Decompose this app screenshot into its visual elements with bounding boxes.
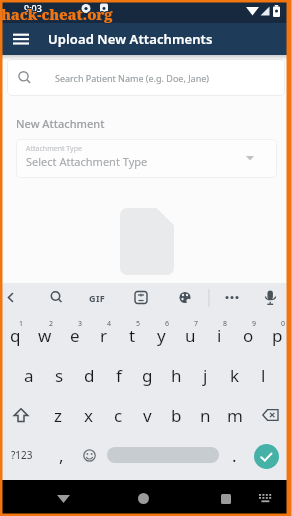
- button[interactable]: ?123: [2, 435, 42, 475]
- staticText: h: [171, 364, 182, 387]
- staticText: 4: [107, 319, 112, 329]
- button[interactable]: [212, 485, 239, 512]
- button[interactable]: o: [234, 315, 263, 355]
- staticText: 8: [223, 319, 228, 329]
- staticText: j: [203, 364, 208, 387]
- button[interactable]: [254, 395, 286, 435]
- staticText: ,: [59, 444, 64, 467]
- button[interactable]: z: [43, 395, 73, 435]
- staticText: ?123: [11, 448, 33, 462]
- staticText: hack-cheat.org: [0, 4, 112, 24]
- button[interactable]: .: [222, 435, 246, 475]
- button[interactable]: b: [162, 395, 191, 435]
- staticText: GIF: [89, 292, 106, 304]
- button[interactable]: q: [0, 315, 30, 355]
- staticText: 9: [252, 319, 257, 329]
- staticText: Upload New Attachments: [48, 30, 213, 48]
- button[interactable]: s: [44, 355, 74, 395]
- button[interactable]: w: [30, 315, 60, 355]
- staticText: e: [70, 324, 80, 347]
- button[interactable]: v: [133, 395, 162, 435]
- staticText: z: [54, 404, 62, 427]
- staticText: w: [38, 324, 52, 347]
- button[interactable]: Attachment Type: [16, 139, 277, 178]
- staticText: m: [227, 404, 243, 427]
- button[interactable]: [130, 485, 157, 512]
- staticText: v: [143, 404, 152, 427]
- staticText: hack-cheat.org: [1, 3, 113, 23]
- staticText: 0: [281, 319, 286, 329]
- button[interactable]: y: [147, 315, 176, 355]
- staticText: Attachment Type: [26, 144, 82, 154]
- button[interactable]: ,: [48, 435, 74, 475]
- staticText: a: [24, 364, 34, 387]
- staticText: Select Attachment Type: [26, 154, 148, 169]
- button[interactable]: l: [249, 355, 278, 395]
- staticText: x: [84, 404, 93, 427]
- staticText: 2: [49, 319, 54, 329]
- staticText: 1: [19, 319, 24, 329]
- staticText: hack-cheat.org: [0, 3, 112, 23]
- button[interactable]: d: [74, 355, 104, 395]
- button[interactable]: t: [118, 315, 147, 355]
- staticText: hack-cheat.org: [2, 5, 114, 25]
- staticText: 5: [136, 319, 141, 329]
- button[interactable]: j: [191, 355, 220, 395]
- staticText: Search Patient Name (e.g. Doe, Jane): [55, 72, 210, 84]
- staticText: hack-cheat.org: [1, 5, 113, 25]
- staticText: hack-cheat.org: [1, 4, 113, 24]
- button[interactable]: [107, 447, 219, 463]
- staticText: hack-cheat.org: [2, 4, 114, 24]
- staticText: 7: [194, 319, 199, 329]
- button[interactable]: r: [89, 315, 118, 355]
- button[interactable]: k: [220, 355, 249, 395]
- button[interactable]: e: [60, 315, 89, 355]
- button[interactable]: [6, 395, 36, 435]
- button[interactable]: c: [103, 395, 133, 435]
- staticText: 6: [165, 319, 170, 329]
- button[interactable]: p: [263, 315, 292, 355]
- staticText: o: [243, 324, 254, 347]
- button[interactable]: h: [162, 355, 191, 395]
- button[interactable]: g: [133, 355, 162, 395]
- button[interactable]: [76, 435, 102, 475]
- staticText: s: [55, 364, 64, 387]
- button[interactable]: [254, 444, 279, 469]
- staticText: l: [261, 364, 266, 387]
- button[interactable]: u: [176, 315, 205, 355]
- staticText: c: [114, 404, 123, 427]
- staticText: q: [10, 324, 21, 347]
- staticText: f: [116, 364, 122, 387]
- staticText: k: [230, 364, 240, 387]
- staticText: d: [84, 364, 95, 387]
- staticText: t: [129, 324, 136, 347]
- staticText: g: [142, 364, 153, 387]
- button[interactable]: m: [220, 395, 249, 435]
- staticText: r: [100, 324, 108, 347]
- button[interactable]: x: [73, 395, 103, 435]
- button[interactable]: i: [205, 315, 234, 355]
- staticText: y: [157, 324, 166, 347]
- staticText: New Attachment: [16, 116, 105, 131]
- staticText: b: [171, 404, 182, 427]
- button[interactable]: Search Patient Name (e.g. Doe, Jane): [7, 59, 285, 96]
- button[interactable]: [252, 485, 279, 512]
- staticText: 9:03: [24, 2, 42, 14]
- staticText: u: [185, 324, 196, 347]
- button[interactable]: f: [104, 355, 133, 395]
- button[interactable]: [50, 485, 77, 512]
- button[interactable]: a: [14, 355, 44, 395]
- staticText: 3: [78, 319, 83, 329]
- staticText: n: [200, 404, 211, 427]
- staticText: .: [232, 444, 237, 467]
- button[interactable]: [6, 24, 36, 54]
- staticText: p: [272, 324, 283, 347]
- button[interactable]: n: [191, 395, 220, 435]
- staticText: i: [217, 324, 222, 347]
